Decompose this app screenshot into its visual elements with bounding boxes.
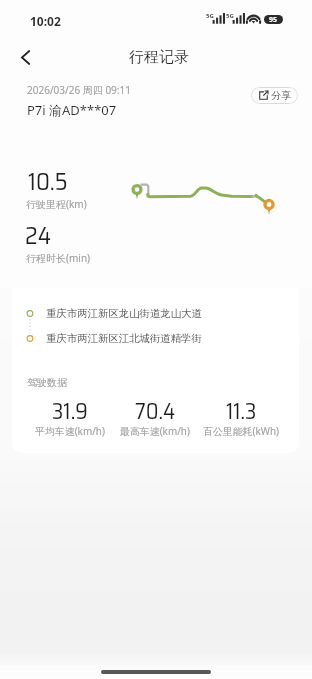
staticText: 行程时长(min) [26, 251, 91, 265]
staticText: 行程记录 [129, 48, 189, 67]
staticText: 重庆市两江新区江北城街道精学街 [46, 332, 202, 345]
staticText: 2026/03/26 周四 09:11 [27, 83, 131, 97]
staticText: 最高车速(km/h) [120, 424, 190, 438]
staticText: P7i 渝AD***07 [27, 101, 117, 119]
staticText: 31.9 [52, 394, 88, 429]
staticText: 重庆市两江新区龙山街道龙山大道 [46, 307, 202, 320]
staticText: 70.4 [135, 394, 176, 429]
button[interactable]: 分享 [251, 87, 298, 104]
staticText: 24 [25, 217, 52, 255]
staticText: 5G [226, 12, 234, 20]
staticText: 95 [269, 15, 278, 24]
staticText: 百公里能耗(kWh) [203, 424, 279, 438]
staticText: 分享 [271, 89, 291, 102]
button[interactable]: Back [6, 38, 44, 76]
staticText: 11.3 [226, 394, 257, 429]
staticText: 平均车速(km/h) [35, 424, 105, 438]
staticText: 10.5 [28, 163, 68, 201]
staticText: 驾驶数据 [27, 376, 67, 389]
staticText: 行驶里程(km) [26, 197, 87, 211]
staticText: 5G [206, 12, 214, 20]
staticText: 10:02 [30, 13, 61, 29]
